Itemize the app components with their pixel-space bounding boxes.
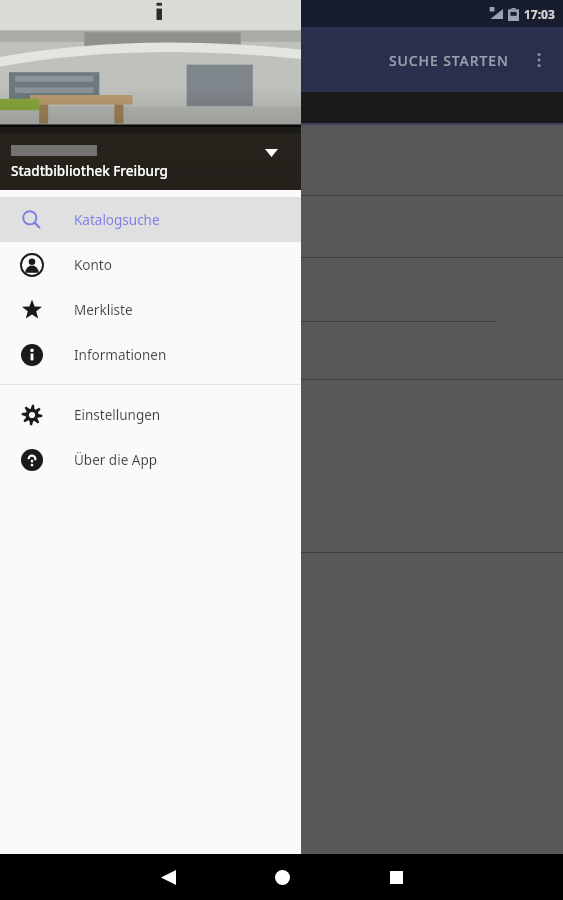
- staticText: Einstellungen: [74, 406, 161, 424]
- button[interactable]: Merkliste: [0, 287, 301, 332]
- button[interactable]: Über die App: [0, 437, 301, 482]
- button[interactable]: Katalogsuche: [0, 197, 301, 242]
- button[interactable]: Home: [253, 854, 311, 900]
- button[interactable]: SUCHE STARTEN: [379, 43, 519, 78]
- button[interactable]: Einstellungen: [0, 392, 301, 437]
- button[interactable]: Stadtbibliothek Freiburg: [0, 0, 301, 190]
- staticText: Merkliste: [74, 301, 133, 319]
- button[interactable]: Konto: [0, 242, 301, 287]
- button[interactable]: Recent apps: [367, 854, 425, 900]
- staticText: Konto: [74, 256, 112, 274]
- button[interactable]: More options: [519, 40, 559, 80]
- button[interactable]: Back: [139, 854, 197, 900]
- staticText: Katalogsuche: [74, 211, 160, 229]
- staticText: 17:03: [524, 6, 555, 22]
- button[interactable]: Informationen: [0, 332, 301, 377]
- staticText: Informationen: [74, 346, 167, 364]
- staticText: Über die App: [74, 451, 158, 469]
- staticText: Stadtbibliothek Freiburg: [11, 162, 168, 180]
- staticText: SUCHE STARTEN: [389, 51, 509, 70]
